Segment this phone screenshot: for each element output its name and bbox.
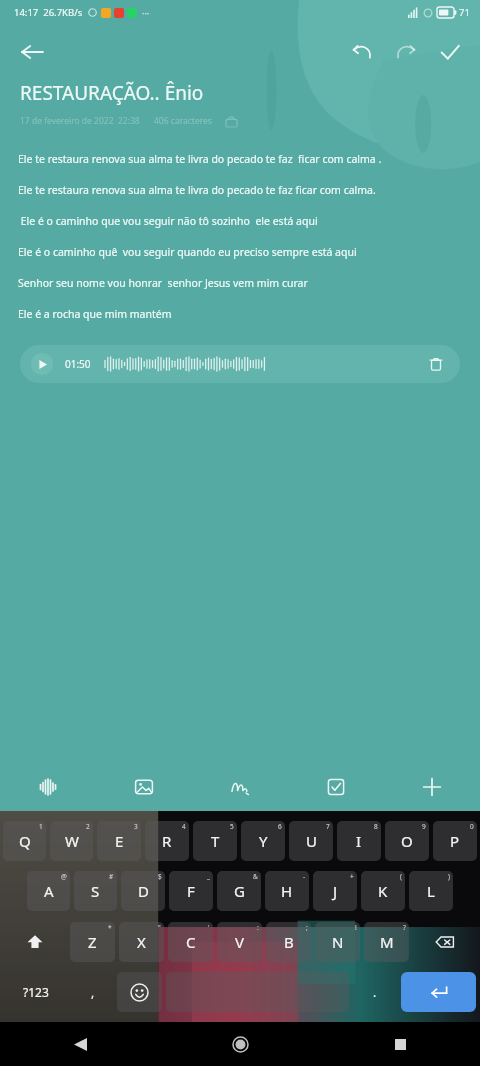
- staticText: #: [109, 872, 114, 881]
- button[interactable]: C: [168, 922, 213, 962]
- button[interactable]: U: [289, 821, 333, 861]
- staticText: _: [207, 872, 210, 881]
- staticText: &: [253, 872, 258, 881]
- button[interactable]: Home: [160, 1022, 320, 1066]
- staticText: W: [65, 831, 79, 851]
- button[interactable]: E: [97, 821, 141, 861]
- button[interactable]: Undo: [340, 30, 384, 74]
- button[interactable]: Back: [10, 30, 54, 74]
- staticText: +: [350, 872, 354, 881]
- button[interactable]: Comma: [73, 972, 113, 1012]
- staticText: 0: [470, 822, 474, 831]
- button[interactable]: Handwriting: [192, 763, 288, 811]
- button[interactable]: Back: [0, 1022, 160, 1066]
- staticText: :: [257, 923, 259, 932]
- button[interactable]: L: [409, 871, 453, 911]
- staticText: J: [333, 881, 338, 901]
- staticText: M: [380, 932, 394, 952]
- staticText: C: [186, 932, 196, 952]
- staticText: ': [208, 923, 210, 932]
- staticText: 4: [182, 822, 186, 831]
- staticText: 6: [278, 822, 282, 831]
- button[interactable]: V: [217, 922, 262, 962]
- button[interactable]: X: [119, 922, 164, 962]
- button[interactable]: Z: [70, 922, 115, 962]
- button[interactable]: D: [121, 871, 165, 911]
- staticText: ): [448, 872, 450, 881]
- staticText: ···: [142, 7, 150, 19]
- staticText: ?123: [23, 984, 49, 1000]
- button[interactable]: P: [433, 821, 477, 861]
- staticText: 5: [230, 822, 234, 831]
- staticText: ,: [91, 984, 95, 1000]
- button[interactable]: Space: [166, 972, 349, 1012]
- staticText: 3: [134, 822, 138, 831]
- staticText: Ele é o caminho quê vou seguir quando eu…: [18, 245, 357, 259]
- staticText: Ele te restaura renova sua alma te livra…: [18, 152, 382, 166]
- button[interactable]: F: [169, 871, 213, 911]
- button[interactable]: S: [74, 871, 117, 911]
- staticText: Ele te restaura renova sua alma te livra…: [18, 183, 376, 197]
- button[interactable]: H: [265, 871, 309, 911]
- button[interactable]: M: [364, 922, 409, 962]
- staticText: A: [44, 881, 54, 901]
- button[interactable]: Symbols: [3, 972, 69, 1012]
- staticText: O: [401, 831, 413, 851]
- button[interactable]: Play: [31, 353, 53, 375]
- button[interactable]: Recents: [320, 1022, 480, 1066]
- staticText: Ele é a rocha que mim mantém: [18, 307, 172, 321]
- staticText: Ele é o caminho que vou seguir não tô so…: [18, 214, 318, 228]
- button[interactable]: Emoji: [117, 972, 162, 1012]
- button[interactable]: B: [266, 922, 311, 962]
- staticText: *: [108, 923, 112, 932]
- button[interactable]: Checklist: [288, 763, 384, 811]
- staticText: P: [450, 831, 460, 851]
- button[interactable]: Delete recording: [423, 351, 449, 377]
- staticText: L: [427, 881, 435, 901]
- button[interactable]: N: [315, 922, 360, 962]
- button[interactable]: A: [27, 871, 70, 911]
- staticText: ": [158, 923, 161, 932]
- staticText: Y: [259, 831, 268, 851]
- staticText: K: [378, 881, 388, 901]
- staticText: Senhor seu nome vou honrar senhor Jesus …: [18, 276, 308, 290]
- staticText: N: [332, 932, 344, 952]
- staticText: S: [91, 881, 100, 901]
- button[interactable]: Insert image: [96, 763, 192, 811]
- button[interactable]: I: [337, 821, 381, 861]
- staticText: Q: [19, 831, 31, 851]
- button[interactable]: Enter: [401, 972, 476, 1012]
- staticText: B: [284, 932, 294, 952]
- staticText: 9: [422, 822, 426, 831]
- staticText: 14:17 26.7KB/s: [14, 6, 83, 19]
- staticText: V: [235, 932, 245, 952]
- button[interactable]: W: [50, 821, 93, 861]
- staticText: !: [355, 923, 357, 932]
- button[interactable]: Q: [3, 821, 46, 861]
- staticText: RESTAURAÇÃO.. Ênio: [20, 80, 204, 106]
- staticText: 71: [459, 6, 470, 19]
- button[interactable]: J: [313, 871, 357, 911]
- button[interactable]: K: [361, 871, 405, 911]
- button[interactable]: Y: [241, 821, 285, 861]
- button[interactable]: G: [217, 871, 261, 911]
- button[interactable]: Voice recording: [0, 763, 96, 811]
- staticText: Z: [88, 932, 97, 952]
- staticText: U: [306, 831, 317, 851]
- button[interactable]: Shift: [3, 922, 66, 962]
- staticText: 8: [374, 822, 378, 831]
- button[interactable]: Done: [428, 30, 472, 74]
- button[interactable]: T: [193, 821, 237, 861]
- button[interactable]: Backspace: [413, 922, 477, 962]
- staticText: @: [61, 872, 67, 881]
- button[interactable]: Redo: [384, 30, 428, 74]
- button[interactable]: Play: [20, 345, 460, 383]
- button[interactable]: Period: [353, 972, 396, 1012]
- button[interactable]: R: [145, 821, 189, 861]
- staticText: ;: [306, 923, 308, 932]
- staticText: 17 de fevereiro de 2022 22:38: [20, 115, 140, 127]
- staticText: .: [373, 984, 377, 1000]
- button[interactable]: More: [384, 763, 480, 811]
- staticText: D: [138, 881, 149, 901]
- button[interactable]: O: [385, 821, 429, 861]
